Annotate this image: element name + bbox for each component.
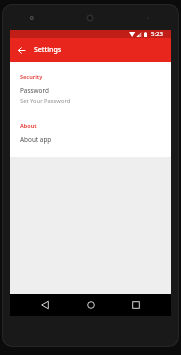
- staticText: About app: [20, 135, 52, 144]
- staticText: Settings: [34, 45, 62, 55]
- button[interactable]: Back: [34, 294, 56, 316]
- staticText: Password: [20, 86, 49, 95]
- staticText: 5:23: [151, 30, 163, 38]
- button[interactable]: Password: [10, 80, 171, 108]
- button[interactable]: About app: [10, 129, 171, 147]
- button[interactable]: Back: [14, 43, 28, 57]
- button[interactable]: Home: [80, 294, 102, 316]
- staticText: Security: [20, 73, 43, 80]
- button[interactable]: Recents: [125, 294, 147, 316]
- staticText: Set Your Password: [20, 97, 71, 105]
- staticText: About: [20, 122, 37, 129]
